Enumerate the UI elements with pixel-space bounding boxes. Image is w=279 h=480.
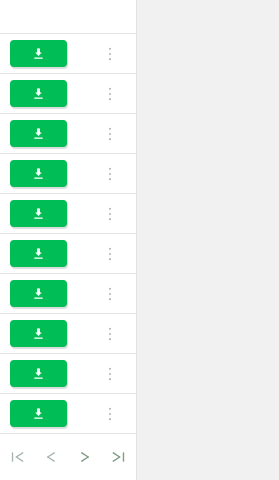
button[interactable]: More options	[98, 194, 122, 233]
button[interactable]: More options	[98, 274, 122, 313]
button[interactable]: More options	[98, 314, 122, 353]
button[interactable]: Download	[10, 320, 67, 347]
button[interactable]: More options	[98, 154, 122, 193]
button[interactable]: Download	[10, 280, 67, 307]
button[interactable]: First page	[0, 434, 34, 479]
button[interactable]: Download	[10, 240, 67, 267]
button[interactable]: Previous page	[34, 434, 68, 479]
button[interactable]: More options	[98, 114, 122, 153]
button[interactable]: Download	[10, 120, 67, 147]
button[interactable]: More options	[98, 74, 122, 113]
button[interactable]: Download	[10, 200, 67, 227]
button[interactable]: Download	[10, 400, 67, 427]
button[interactable]: Download	[10, 360, 67, 387]
button[interactable]: More options	[98, 234, 122, 273]
button[interactable]: Last page	[102, 434, 136, 479]
button[interactable]: More options	[98, 354, 122, 393]
button[interactable]: Download	[10, 80, 67, 107]
button[interactable]: Download	[10, 40, 67, 67]
button[interactable]: Download	[10, 160, 67, 187]
button[interactable]: More options	[98, 34, 122, 73]
button[interactable]: More options	[98, 394, 122, 433]
button[interactable]: Next page	[68, 434, 102, 479]
